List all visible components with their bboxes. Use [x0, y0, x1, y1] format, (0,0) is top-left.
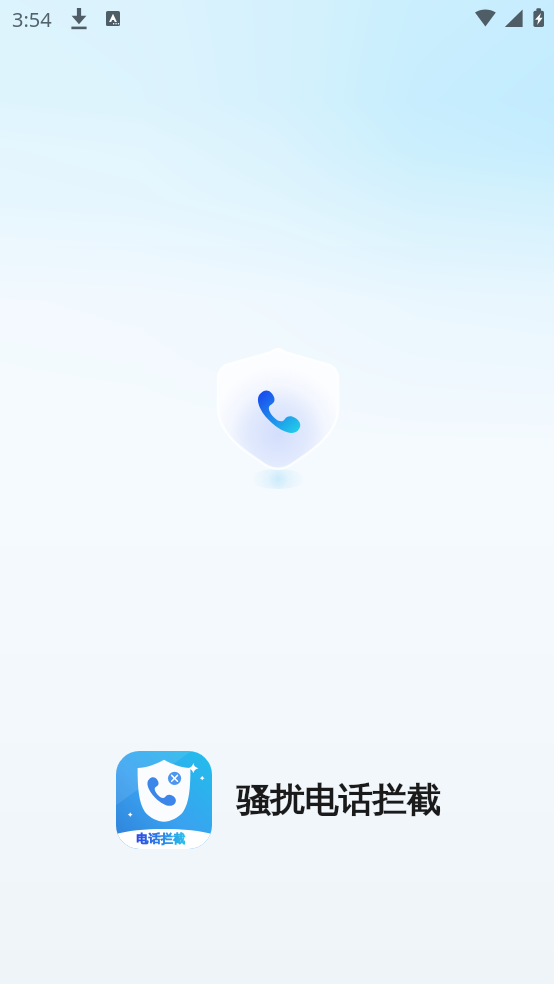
button[interactable]: 骚扰电话拦截 [202, 336, 354, 504]
button[interactable]: 电话拦截 [116, 751, 440, 849]
staticText: 电话拦截 [136, 831, 186, 846]
staticText: 骚扰电话拦截 [236, 779, 440, 822]
staticText: 3:54 [12, 6, 52, 33]
